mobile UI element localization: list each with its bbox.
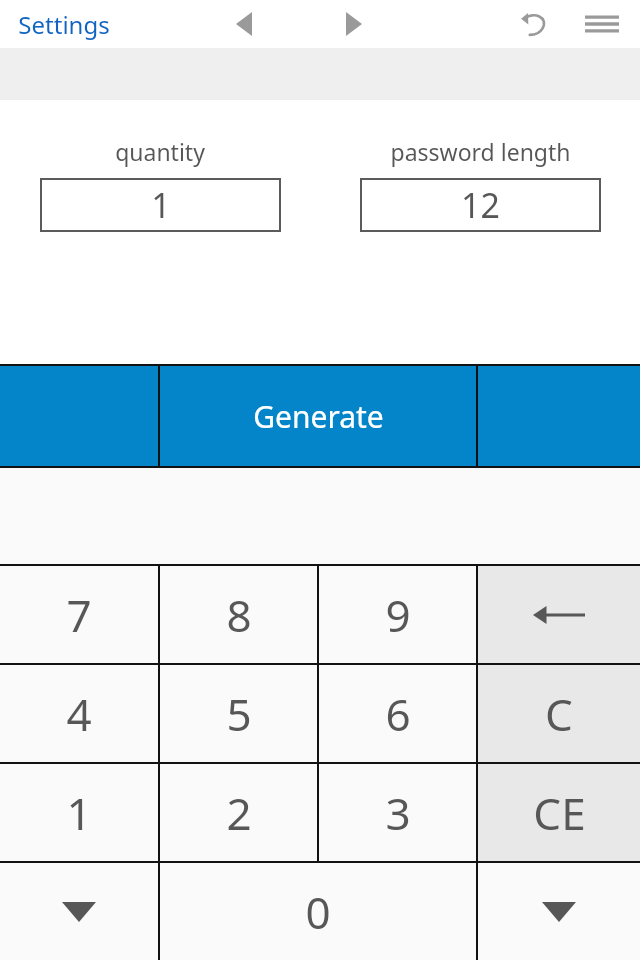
button[interactable]: 5 — [160, 665, 317, 762]
staticText: 8 — [226, 585, 252, 645]
staticText: 2 — [226, 783, 252, 843]
button[interactable]: 8 — [160, 566, 317, 663]
button[interactable]: 4 — [0, 665, 158, 762]
button[interactable]: 1 — [40, 178, 281, 232]
staticText: 3 — [385, 783, 411, 843]
staticText: Generate — [253, 396, 384, 437]
button[interactable]: Menu — [578, 0, 626, 48]
staticText: Settings — [18, 8, 110, 41]
button[interactable]: 7 — [0, 566, 158, 663]
button[interactable]: 2 — [160, 764, 317, 861]
staticText: CE — [533, 783, 586, 843]
staticText: 5 — [226, 684, 252, 744]
staticText: quantity — [115, 136, 205, 167]
staticText: 4 — [66, 684, 92, 744]
button[interactable]: Previous — [222, 2, 266, 46]
button[interactable]: Decrease quantity — [0, 863, 158, 960]
button[interactable]: C — [478, 665, 640, 762]
button[interactable]: Generate — [160, 366, 476, 466]
button[interactable]: Undo — [510, 0, 558, 48]
button[interactable]: 1 — [0, 764, 158, 861]
button[interactable]: Settings — [6, 2, 122, 47]
button[interactable]: Backspace — [478, 566, 640, 663]
button[interactable]: CE — [478, 764, 640, 861]
staticText: 1 — [66, 783, 92, 843]
button[interactable]: 6 — [319, 665, 476, 762]
button[interactable]: 9 — [319, 566, 476, 663]
button[interactable]: 3 — [319, 764, 476, 861]
staticText: C — [545, 684, 573, 744]
staticText: 6 — [385, 684, 411, 744]
staticText: password length — [390, 136, 571, 167]
staticText: 12 — [461, 182, 500, 228]
staticText: 0 — [305, 882, 331, 942]
button[interactable]: 0 — [160, 863, 476, 960]
button[interactable]: Decrease password length — [478, 863, 640, 960]
button[interactable]: 12 — [360, 178, 601, 232]
button[interactable]: Next — [332, 2, 376, 46]
staticText: 7 — [66, 585, 92, 645]
staticText: 1 — [151, 182, 171, 228]
staticText: 9 — [385, 585, 411, 645]
